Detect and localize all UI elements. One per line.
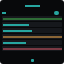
button[interactable]: Add — [54, 11, 59, 15]
button[interactable] — [2, 34, 62, 39]
button[interactable] — [2, 28, 62, 33]
button[interactable] — [2, 46, 62, 51]
button[interactable] — [2, 40, 62, 45]
button[interactable] — [2, 16, 62, 21]
button[interactable] — [2, 22, 62, 27]
button[interactable]: Home — [31, 59, 34, 62]
